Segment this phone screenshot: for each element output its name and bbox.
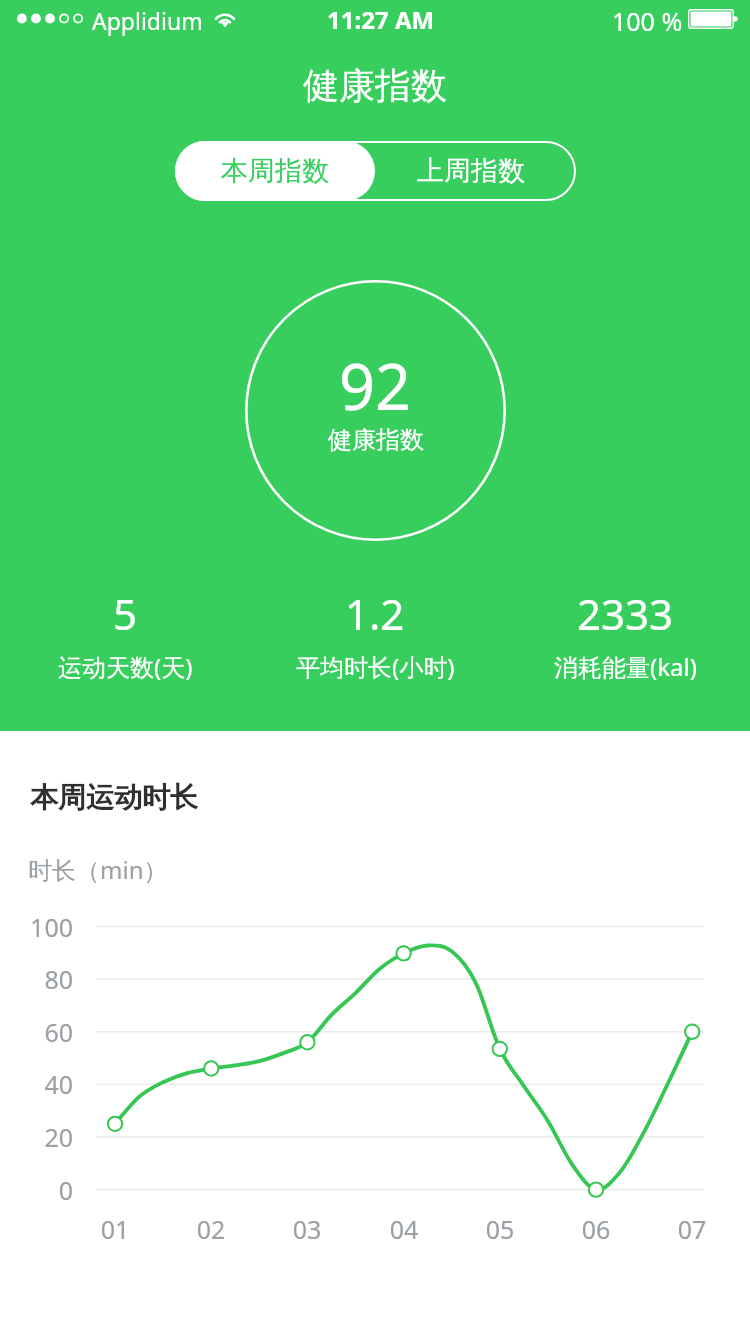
- staticText: 运动天数(天): [58, 650, 193, 683]
- staticText: 健康指数: [328, 425, 424, 455]
- staticText: 06: [556, 1212, 636, 1246]
- staticText: 02: [171, 1212, 251, 1246]
- staticText: 本周运动时长: [30, 780, 198, 815]
- staticText: 40: [13, 1067, 73, 1101]
- staticText: 100 %: [612, 4, 683, 38]
- staticText: 04: [364, 1212, 444, 1246]
- button[interactable]: 上周指数: [375, 141, 576, 201]
- button[interactable]: 2333: [500, 585, 750, 683]
- button[interactable]: 1.2: [250, 585, 500, 683]
- staticText: Applidium: [92, 5, 203, 36]
- staticText: 20: [13, 1120, 73, 1154]
- staticText: 05: [460, 1212, 540, 1246]
- staticText: 本周指数: [221, 154, 329, 188]
- staticText: 100: [13, 910, 73, 944]
- staticText: 消耗能量(kal): [554, 650, 697, 683]
- staticText: 60: [13, 1015, 73, 1049]
- other: Wi-Fi: [211, 8, 239, 27]
- staticText: 01: [75, 1212, 155, 1246]
- staticText: 1.2: [345, 585, 405, 642]
- staticText: 时长（min）: [28, 853, 168, 886]
- staticText: 健康指数: [303, 63, 447, 108]
- staticText: 03: [267, 1212, 347, 1246]
- button[interactable]: 本周指数: [175, 141, 375, 201]
- staticText: 80: [13, 962, 73, 996]
- other: Signal strength: [17, 13, 83, 24]
- staticText: 07: [652, 1212, 732, 1246]
- staticText: 平均时长(小时): [296, 650, 455, 683]
- staticText: 11:27 AM: [327, 3, 435, 36]
- button[interactable]: 5: [0, 585, 250, 683]
- staticText: 2333: [577, 585, 674, 642]
- staticText: 92: [339, 343, 412, 429]
- staticText: 上周指数: [417, 154, 525, 188]
- other: Battery full: [688, 9, 738, 29]
- staticText: 0: [13, 1173, 73, 1207]
- staticText: 5: [113, 585, 138, 642]
